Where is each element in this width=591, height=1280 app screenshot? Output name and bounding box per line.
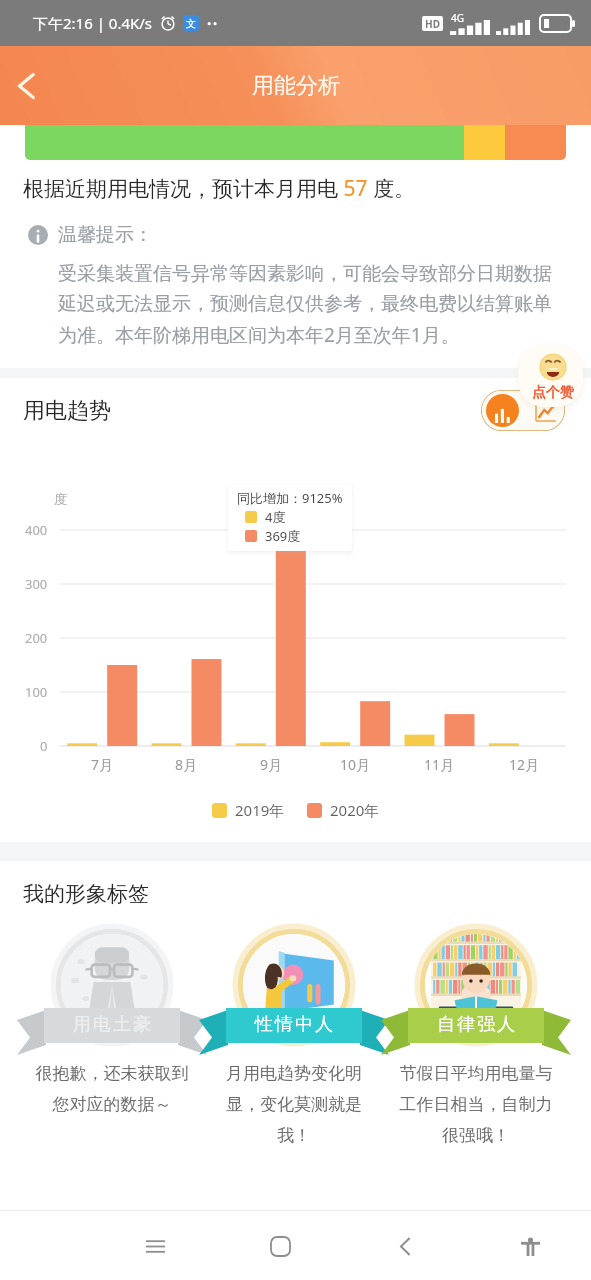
button[interactable]: Switch chart type <box>481 390 565 431</box>
staticText: 2020年 <box>330 800 380 820</box>
staticText: 4G <box>451 11 464 25</box>
staticText: 0 <box>40 737 48 755</box>
button[interactable]: Like <box>518 345 583 407</box>
staticText: 4度 <box>265 508 286 526</box>
staticText: 369度 <box>265 527 301 545</box>
staticText: 200 <box>25 629 48 647</box>
staticText: 月用电趋势变化明显，变化莫测就是我！ <box>214 1063 374 1146</box>
staticText: 下午2:16 | 0.4K/s <box>33 13 153 33</box>
staticText: 性情中人 <box>254 1013 334 1036</box>
staticText: 400 <box>25 521 48 539</box>
staticText: 300 <box>25 575 48 593</box>
staticText: 100 <box>25 683 48 701</box>
staticText: 10月 <box>340 755 371 774</box>
button[interactable]: 性情中人 <box>203 921 385 1146</box>
staticText: 11月 <box>424 755 455 774</box>
staticText: 用电趋势 <box>23 397 111 425</box>
staticText: 2019年 <box>235 800 285 820</box>
button[interactable]: Back <box>3 63 49 109</box>
staticText: 7月 <box>91 755 114 774</box>
staticText: 自律强人 <box>436 1013 516 1036</box>
staticText: 很抱歉，还未获取到您对应的数据～ <box>32 1063 192 1115</box>
staticText: 节假日平均用电量与工作日相当，自制力很强哦！ <box>396 1063 556 1146</box>
staticText: 用能分析 <box>252 72 340 100</box>
button[interactable]: Home <box>255 1221 305 1271</box>
staticText: 用电土豪 <box>72 1013 152 1036</box>
staticText: 文 <box>186 17 196 30</box>
staticText: HD <box>425 17 440 31</box>
staticText: 12月 <box>509 755 540 774</box>
button[interactable]: Accessibility <box>505 1221 555 1271</box>
button[interactable]: 自律强人 <box>385 921 567 1146</box>
staticText: 温馨提示： <box>58 223 153 247</box>
button[interactable]: Back <box>380 1221 430 1271</box>
staticText: 根据近期用电情况，预计本月用电 57 度。 <box>23 174 415 203</box>
staticText: 8月 <box>175 755 198 774</box>
button[interactable]: Recents <box>130 1221 180 1271</box>
staticText: 9月 <box>260 755 283 774</box>
staticText: 受采集装置信号异常等因素影响，可能会导致部分日期数据延迟或无法显示，预测信息仅供… <box>58 262 555 347</box>
staticText: 度 <box>54 491 67 507</box>
staticText: 我的形象标签 <box>23 881 149 907</box>
staticText: 点个赞 <box>532 384 574 402</box>
button[interactable]: 用电土豪 <box>21 921 203 1115</box>
staticText: 同比增加：9125% <box>237 489 343 507</box>
